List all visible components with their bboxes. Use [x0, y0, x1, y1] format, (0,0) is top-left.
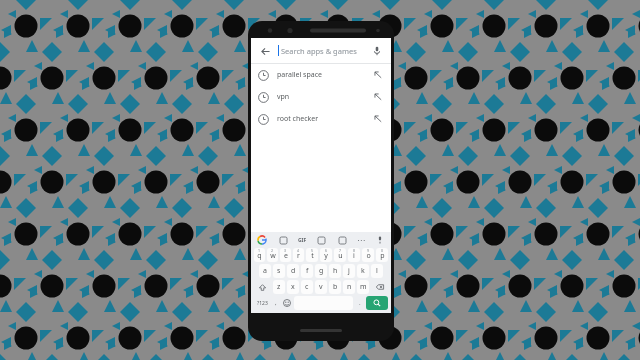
button[interactable]: 7 — [334, 248, 346, 262]
button[interactable]: ⋯ — [357, 236, 365, 245]
button[interactable]: s — [273, 264, 285, 278]
staticText: r — [297, 251, 300, 261]
staticText: 5 — [311, 248, 314, 253]
staticText: Search apps & games — [281, 46, 369, 56]
button[interactable]: c — [301, 280, 313, 294]
staticText: o — [366, 251, 371, 261]
button[interactable]: vpn — [251, 86, 391, 108]
button[interactable]: g — [315, 264, 327, 278]
button[interactable]: 6 — [320, 248, 332, 262]
button[interactable]: a — [259, 264, 271, 278]
staticText: n — [347, 282, 352, 292]
staticText: y — [324, 251, 328, 261]
staticText: . — [359, 299, 361, 307]
staticText: w — [270, 251, 276, 261]
button[interactable]: Google — [256, 234, 268, 246]
staticText: 1 — [258, 248, 261, 253]
button[interactable]: d — [287, 264, 299, 278]
button[interactable]: 5 — [306, 248, 318, 262]
button[interactable]: ?123 — [254, 296, 270, 310]
button[interactable]: Insert vpn — [372, 91, 384, 103]
staticText: x — [291, 282, 295, 292]
button[interactable]: z — [273, 280, 285, 294]
staticText: 2 — [271, 248, 274, 253]
button[interactable]: . — [355, 296, 365, 310]
staticText: l — [376, 266, 378, 276]
staticText: 7 — [339, 248, 342, 253]
staticText: i — [353, 251, 355, 261]
staticText: 6 — [325, 248, 328, 253]
button[interactable]: sticker — [277, 234, 289, 246]
button[interactable]: Insert parallel space — [372, 69, 384, 81]
button[interactable]: m — [357, 280, 369, 294]
staticText: u — [338, 251, 343, 261]
button[interactable]: 8 — [348, 248, 360, 262]
staticText: , — [275, 299, 277, 307]
button[interactable]: , — [271, 296, 281, 310]
staticText: t — [311, 251, 314, 261]
staticText: vpn — [277, 92, 372, 102]
staticText: a — [263, 266, 267, 276]
button[interactable]: root checker — [251, 108, 391, 130]
button[interactable]: l — [371, 264, 383, 278]
staticText: j — [348, 266, 350, 276]
staticText: 3 — [284, 248, 287, 253]
button[interactable]: 0 — [376, 248, 388, 262]
button[interactable]: Back — [257, 43, 273, 59]
button[interactable]: n — [343, 280, 355, 294]
button[interactable]: k — [357, 264, 369, 278]
button[interactable]: Voice search — [369, 43, 385, 59]
staticText: s — [277, 266, 281, 276]
staticText: 4 — [297, 248, 300, 253]
button[interactable]: Search — [366, 296, 388, 310]
staticText: m — [360, 282, 367, 292]
button[interactable]: Backspace — [371, 280, 388, 294]
staticText: root checker — [277, 114, 372, 124]
button[interactable]: v — [315, 280, 327, 294]
staticText: b — [333, 282, 338, 292]
staticText: g — [319, 266, 324, 276]
button[interactable]: GIF — [298, 237, 307, 244]
button[interactable]: 2 — [267, 248, 278, 262]
button[interactable]: Insert root checker — [372, 113, 384, 125]
staticText: z — [277, 282, 281, 292]
staticText: parallel space — [277, 70, 372, 80]
staticText: d — [291, 266, 296, 276]
button[interactable]: Emoji — [281, 296, 292, 310]
button[interactable]: Shift — [254, 280, 271, 294]
staticText: h — [333, 266, 338, 276]
button[interactable]: theme — [336, 234, 348, 246]
button[interactable]: j — [343, 264, 355, 278]
button[interactable]: b — [329, 280, 341, 294]
staticText: c — [305, 282, 309, 292]
button[interactable]: 1 — [254, 248, 265, 262]
staticText: p — [380, 251, 385, 261]
button[interactable]: x — [287, 280, 299, 294]
staticText: v — [319, 282, 323, 292]
button[interactable]: Voice input — [374, 234, 386, 246]
button[interactable]: translate — [315, 234, 327, 246]
button[interactable]: 3 — [280, 248, 291, 262]
staticText: 0 — [381, 248, 384, 253]
staticText: ?123 — [257, 300, 268, 307]
staticText: f — [306, 266, 309, 276]
staticText: 9 — [367, 248, 370, 253]
staticText: e — [284, 251, 288, 261]
staticText: q — [257, 251, 262, 261]
button[interactable]: h — [329, 264, 341, 278]
button[interactable]: 4 — [293, 248, 304, 262]
button[interactable]: parallel space — [251, 64, 391, 86]
button[interactable]: 9 — [362, 248, 374, 262]
button[interactable]: f — [301, 264, 313, 278]
staticText: k — [361, 266, 365, 276]
staticText: 8 — [353, 248, 356, 253]
